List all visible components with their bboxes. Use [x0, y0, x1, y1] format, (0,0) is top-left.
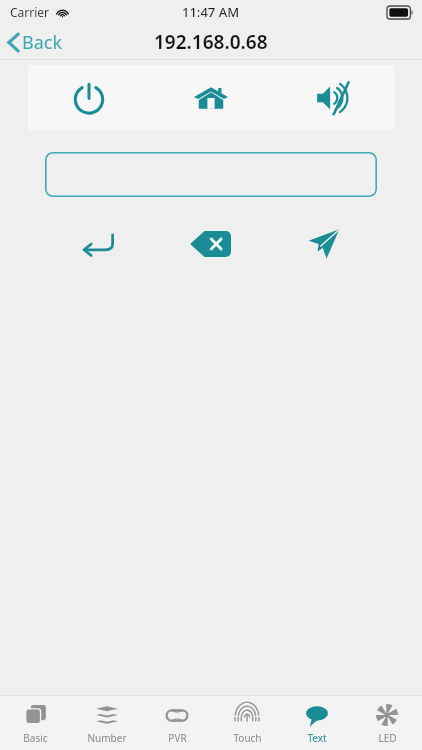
staticText: Carrier [10, 4, 50, 20]
button[interactable]: Backspace [154, 221, 267, 267]
button[interactable] [45, 152, 377, 197]
button[interactable]: Mute [272, 65, 394, 130]
button[interactable]: Enter [42, 221, 154, 267]
staticText: Text [307, 731, 327, 745]
button[interactable]: Touch [212, 696, 282, 750]
button[interactable]: LED [352, 696, 422, 750]
button[interactable]: Home [150, 65, 272, 130]
button[interactable]: Power [28, 65, 150, 130]
staticText: 192.168.0.68 [154, 29, 268, 55]
button[interactable]: Number [71, 696, 142, 750]
staticText: Back [22, 30, 63, 55]
staticText: LED [378, 731, 397, 745]
button[interactable]: Back [0, 26, 73, 59]
staticText: 11:47 AM [182, 3, 240, 21]
button[interactable]: Basic [0, 696, 71, 750]
button[interactable]: Send [267, 221, 380, 267]
button[interactable]: PVR [142, 696, 212, 750]
staticText: PVR [168, 731, 187, 745]
staticText: Number [87, 731, 127, 745]
button[interactable]: Text [282, 696, 352, 750]
staticText: Basic [23, 731, 48, 745]
staticText: Touch [233, 731, 262, 745]
